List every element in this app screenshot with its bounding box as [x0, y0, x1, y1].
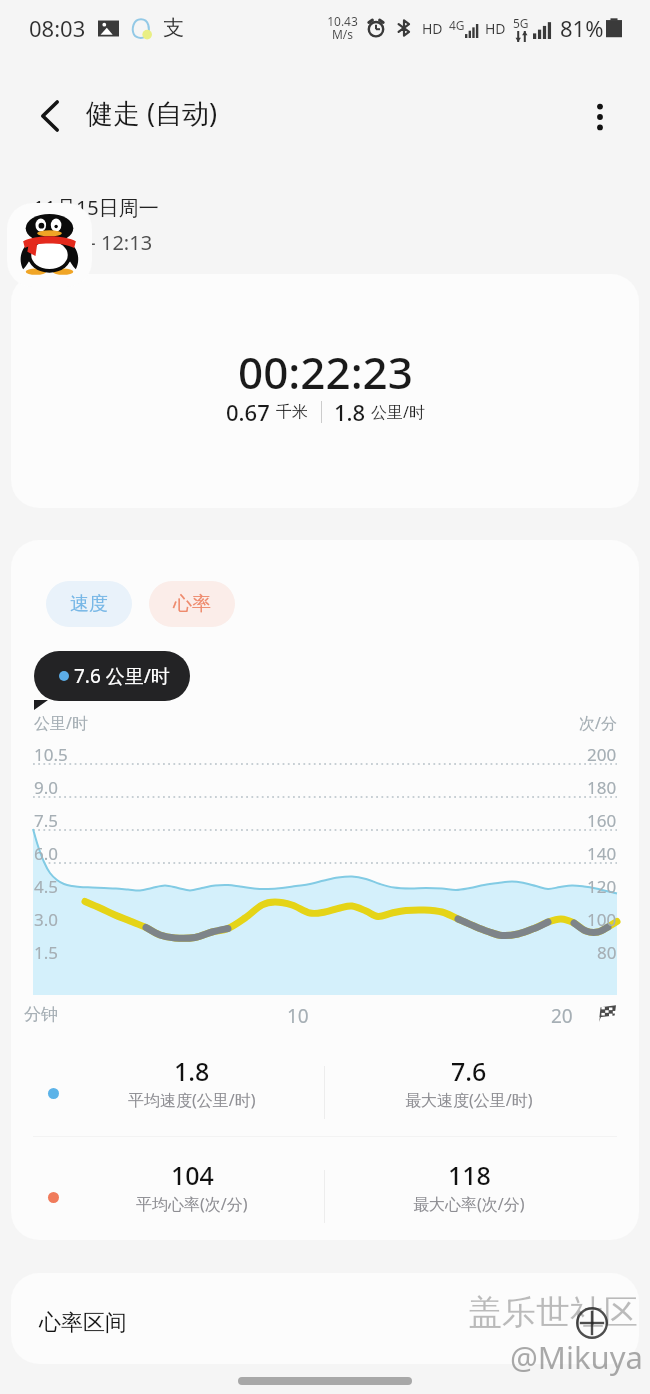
staticText: 4.5 [34, 875, 59, 898]
button[interactable]: 心率区间 [11, 1273, 639, 1364]
staticText: 7.6 公里/时 [74, 663, 170, 689]
button[interactable]: QQ [7, 203, 92, 287]
staticText: 心率区间 [39, 1309, 127, 1337]
staticText: 心率 [173, 592, 211, 616]
staticText: 100 [587, 908, 617, 931]
staticText: 1.5 [34, 941, 59, 964]
staticText: 次/分 [579, 712, 617, 734]
staticText: 1.8 [174, 1054, 210, 1088]
button[interactable]: More options [576, 88, 624, 136]
staticText: 200 [587, 743, 617, 766]
staticText: 速度 [70, 592, 108, 616]
staticText: 4G [449, 17, 465, 33]
staticText: @Mikuya [510, 1336, 643, 1378]
button[interactable]: 00:22:23 [11, 274, 639, 508]
staticText: 5G [513, 15, 529, 31]
staticText: 健走 (自动) [86, 94, 218, 131]
staticText: 11月15日周一 [33, 194, 159, 221]
staticText: 千米 [276, 402, 308, 422]
staticText: 11:51 - 12:13 [33, 229, 153, 256]
staticText: HD [485, 19, 506, 38]
staticText: 120 [587, 875, 617, 898]
staticText: 160 [587, 809, 617, 832]
staticText: 180 [587, 776, 617, 799]
staticText: 0.67 [226, 397, 270, 427]
staticText: 最大速度(公里/时) [405, 1089, 533, 1111]
staticText: 10 [287, 1003, 309, 1029]
staticText: 81% [560, 13, 604, 43]
staticText: 10.5 [34, 743, 68, 766]
staticText: 7.6 [451, 1054, 487, 1088]
staticText: 6.0 [34, 842, 59, 865]
staticText: HD [422, 19, 443, 38]
staticText: 公里/时 [371, 401, 425, 423]
staticText: 1.8 [334, 397, 366, 427]
staticText: 20 [551, 1003, 573, 1029]
staticText: 最大心率(次/分) [413, 1193, 525, 1215]
staticText: 7.5 [34, 809, 59, 832]
staticText: 80 [597, 941, 617, 964]
staticText: 平均心率(次/分) [136, 1193, 248, 1215]
staticText: 104 [171, 1158, 214, 1192]
staticText: 平均速度(公里/时) [128, 1089, 256, 1111]
button[interactable]: 心率 [149, 581, 235, 627]
staticText: 00:22:23 [238, 342, 413, 402]
staticText: 10.43 M/s [327, 13, 358, 43]
button[interactable]: 速度 [46, 581, 132, 627]
staticText: 支 [163, 15, 184, 41]
staticText: 3.0 [34, 908, 59, 931]
staticText: 140 [587, 842, 617, 865]
staticText: 9.0 [34, 776, 59, 799]
staticText: 118 [448, 1158, 491, 1192]
staticText: 分钟 [24, 1004, 58, 1025]
button[interactable]: Back [26, 88, 74, 136]
staticText: 公里/时 [34, 712, 88, 734]
staticText: 08:03 [29, 13, 86, 43]
staticText: 盖乐世社区 [468, 1291, 638, 1334]
